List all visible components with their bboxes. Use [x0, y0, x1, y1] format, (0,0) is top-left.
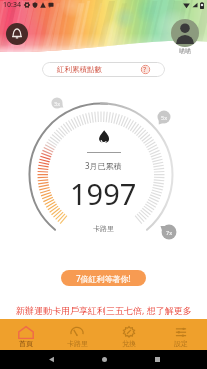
button[interactable]: Profile	[171, 19, 199, 47]
staticText: 紅利累積點數	[57, 65, 102, 74]
button[interactable]: 5x	[157, 110, 171, 124]
button[interactable]: 卡路里	[51, 322, 103, 348]
staticText: ?	[143, 65, 147, 75]
staticText: 10:34	[3, 0, 21, 10]
button[interactable]: 首頁	[0, 322, 51, 348]
staticText: 首頁	[19, 339, 33, 348]
staticText: 喵喵	[179, 47, 191, 55]
button[interactable]: 設定	[155, 322, 207, 348]
staticText: 設定	[174, 339, 188, 348]
button[interactable]: Notifications	[6, 23, 28, 45]
staticText: 7倍紅利等著你!	[76, 273, 131, 284]
staticText: 1997	[70, 174, 137, 213]
button[interactable]: 7x	[161, 224, 177, 240]
button[interactable]: 紅利累積點數	[42, 62, 165, 77]
staticText: 卡路里	[67, 339, 88, 348]
staticText: 3月已累積	[85, 160, 122, 171]
staticText: 3x	[54, 100, 61, 107]
staticText: 兌換	[122, 339, 136, 348]
button[interactable]: 7倍紅利等著你!	[61, 270, 146, 286]
button[interactable]: 3x	[51, 97, 63, 109]
staticText: 新辦運動卡用戶享紅利三五七倍, 想了解更多	[16, 304, 192, 315]
staticText: 7x	[166, 229, 173, 236]
staticText: 卡路里	[93, 224, 114, 233]
button[interactable]: 兌換	[103, 322, 155, 348]
staticText: 5x	[161, 114, 168, 121]
